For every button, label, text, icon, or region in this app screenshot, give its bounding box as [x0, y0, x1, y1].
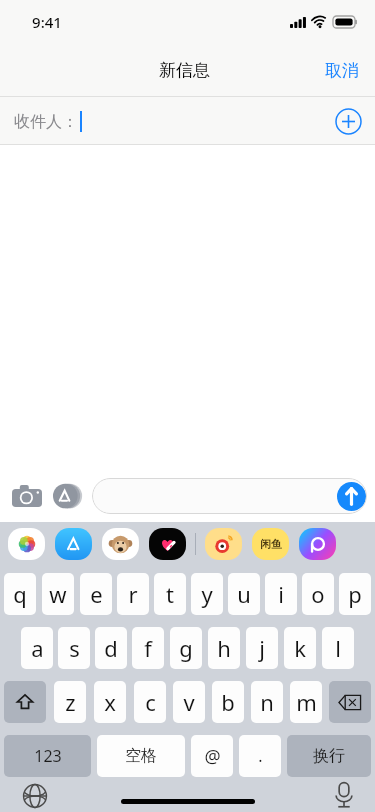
button[interactable]: fitness [149, 528, 186, 560]
button[interactable]: z [54, 681, 86, 723]
staticText: t [166, 579, 174, 609]
staticText: y [201, 579, 213, 609]
staticText: . [258, 745, 263, 767]
button[interactable]: 换行 [287, 735, 371, 777]
staticText: 换行 [313, 746, 345, 766]
button[interactable]: Shift [4, 681, 46, 723]
staticText: h [217, 633, 231, 663]
button[interactable]: Add contact [335, 108, 362, 135]
staticText: @ [204, 744, 221, 769]
button[interactable]: s [58, 627, 90, 669]
button[interactable]: t [154, 573, 186, 615]
staticText: 9:41 [32, 12, 62, 32]
button[interactable]: . [239, 735, 281, 777]
staticText: p [348, 579, 362, 609]
button[interactable]: c [134, 681, 166, 723]
button[interactable]: 123 [4, 735, 91, 777]
staticText: c [145, 687, 156, 717]
button[interactable]: i [265, 573, 297, 615]
staticText: d [104, 633, 118, 663]
button[interactable]: k [284, 627, 316, 669]
staticText: b [221, 687, 235, 717]
button[interactable]: photos [8, 528, 45, 560]
button[interactable]: w [42, 573, 74, 615]
button[interactable]: n [251, 681, 283, 723]
button[interactable]: x [94, 681, 126, 723]
staticText: 闲鱼 [260, 537, 282, 551]
staticText: z [65, 687, 76, 717]
button[interactable]: y [191, 573, 223, 615]
staticText: g [179, 633, 193, 663]
button[interactable]: Dictate [333, 781, 355, 809]
staticText: 取消 [325, 60, 359, 81]
staticText: l [335, 633, 341, 663]
button[interactable]: weibo [205, 528, 242, 560]
button[interactable]: Send [92, 478, 367, 514]
staticText: w [49, 579, 67, 609]
staticText: u [237, 579, 251, 609]
button[interactable]: @ [191, 735, 233, 777]
button[interactable]: l [322, 627, 354, 669]
button[interactable]: v [173, 681, 205, 723]
staticText: s [69, 633, 80, 663]
staticText: j [259, 633, 265, 663]
button[interactable]: appstore [55, 528, 92, 560]
button[interactable]: q [4, 573, 36, 615]
staticText: m [296, 687, 317, 717]
staticText: a [31, 633, 44, 663]
staticText: k [294, 633, 306, 663]
staticText: v [183, 687, 195, 717]
staticText: x [104, 687, 116, 717]
button[interactable]: 取消 [309, 52, 375, 89]
staticText: n [260, 687, 274, 717]
button[interactable]: u [228, 573, 260, 615]
staticText: e [90, 579, 103, 609]
button[interactable]: o [302, 573, 334, 615]
staticText: 空格 [125, 746, 157, 766]
button[interactable]: a [21, 627, 53, 669]
staticText: r [128, 579, 138, 609]
button[interactable]: d [95, 627, 127, 669]
staticText: o [311, 579, 325, 609]
button[interactable]: Camera [10, 479, 44, 513]
staticText: q [13, 579, 27, 609]
staticText: i [278, 579, 284, 609]
button[interactable]: Send [337, 482, 366, 511]
staticText: f [144, 633, 152, 663]
button[interactable]: h [208, 627, 240, 669]
button[interactable]: Switch keyboard [22, 783, 48, 809]
button[interactable]: xianyu [252, 528, 289, 560]
button[interactable]: picsart [299, 528, 336, 560]
button[interactable]: f [132, 627, 164, 669]
staticText: 新信息 [159, 60, 210, 81]
button[interactable]: g [170, 627, 202, 669]
button[interactable]: App Store [50, 479, 84, 513]
button[interactable]: r [117, 573, 149, 615]
button[interactable]: memoji [102, 528, 139, 560]
button[interactable]: m [290, 681, 322, 723]
staticText: 收件人： [14, 112, 78, 132]
button[interactable]: b [212, 681, 244, 723]
button[interactable]: p [339, 573, 371, 615]
staticText: 123 [34, 745, 62, 767]
button[interactable]: 空格 [97, 735, 185, 777]
button[interactable]: j [246, 627, 278, 669]
button[interactable]: e [80, 573, 112, 615]
button[interactable]: Backspace [329, 681, 371, 723]
